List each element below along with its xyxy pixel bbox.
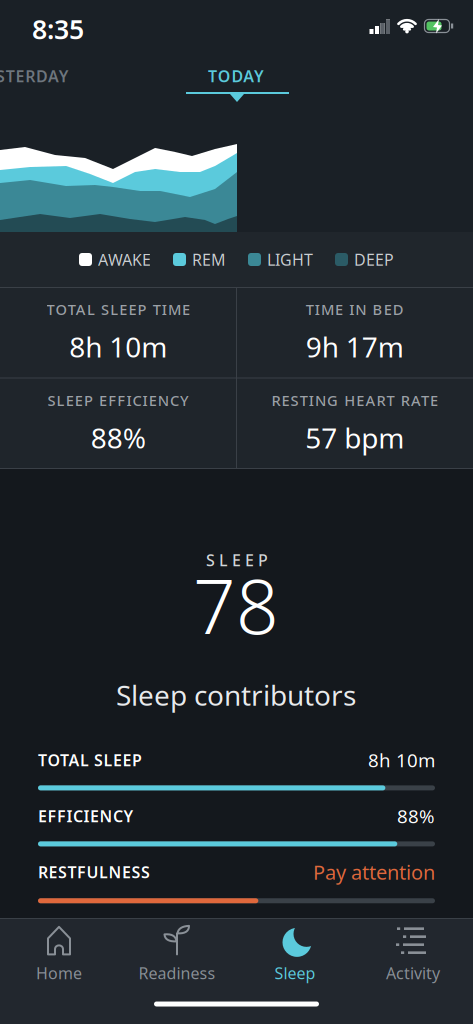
staticText: Home — [36, 962, 82, 984]
staticText: 57 bpm — [305, 419, 404, 456]
staticText: YESTERDAY — [0, 65, 69, 87]
staticText: S L E E P — [206, 549, 268, 571]
staticText: 88% — [91, 419, 146, 456]
staticText: 88% — [397, 804, 435, 828]
staticText: Pay attention — [313, 859, 435, 885]
button[interactable]: TODAY — [191, 61, 281, 91]
staticText: Sleep — [274, 962, 315, 984]
staticText: RESTFULNESS — [38, 861, 150, 883]
staticText: 8h 10m — [69, 328, 167, 365]
staticText: 78 — [193, 555, 279, 655]
staticText: Readiness — [138, 962, 215, 984]
staticText: 8h 10m — [368, 748, 435, 772]
button[interactable]: Sleep — [240, 922, 350, 986]
staticText: TODAY — [208, 65, 264, 87]
staticText: REM — [192, 249, 226, 270]
button[interactable]: YESTERDAY — [0, 61, 77, 91]
staticText: TOTAL SLEEP TIME — [46, 300, 190, 319]
staticText: TOTAL SLEEP — [38, 749, 142, 771]
staticText: RESTING HEART RATE — [271, 391, 438, 410]
staticText: AWAKE — [98, 249, 151, 270]
staticText: DEEP — [354, 249, 394, 270]
button[interactable]: Readiness — [122, 922, 232, 986]
staticText: 8:35 — [32, 11, 84, 47]
staticText: LIGHT — [267, 249, 313, 270]
button[interactable]: Home — [4, 922, 114, 986]
staticText: 9h 17m — [306, 328, 404, 365]
staticText: Sleep contributors — [116, 676, 356, 714]
staticText: TIME IN BED — [306, 300, 404, 319]
staticText: EFFICIENCY — [38, 805, 133, 827]
button[interactable]: Activity — [358, 922, 468, 986]
staticText: Activity — [386, 962, 440, 984]
staticText: SLEEP EFFICIENCY — [47, 391, 189, 410]
